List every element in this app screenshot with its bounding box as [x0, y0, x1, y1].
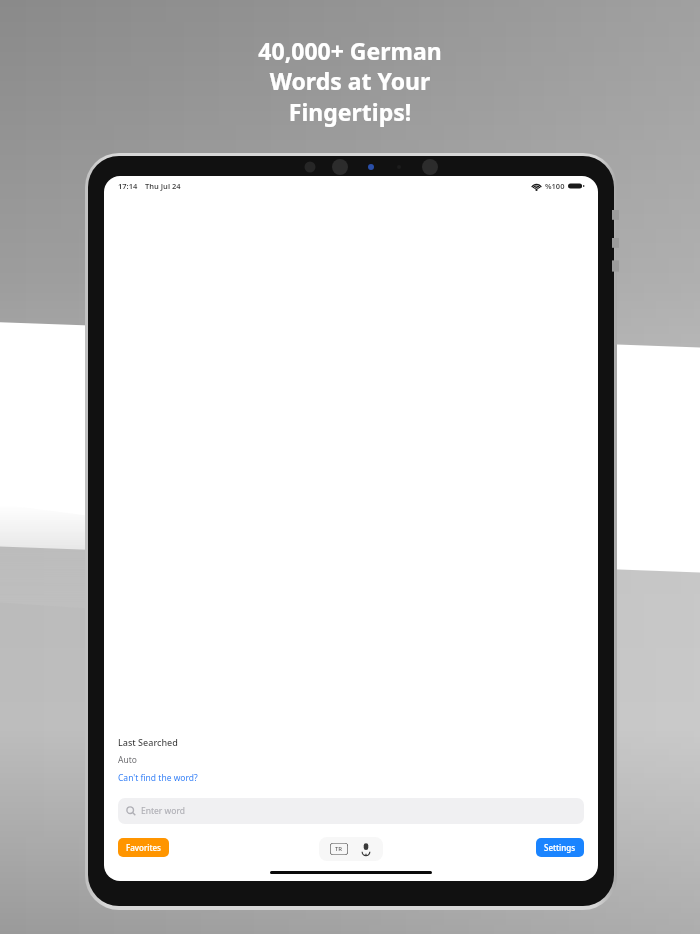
staticText: Settings [544, 842, 576, 853]
staticText: 17:14 [118, 181, 138, 191]
staticText: %100 [545, 181, 565, 191]
staticText: Favorites [126, 842, 161, 853]
button[interactable]: Can't find the word? [118, 772, 198, 784]
button[interactable]: Favorites [118, 838, 169, 857]
button[interactable]: Settings [536, 838, 584, 857]
other: Dictate [360, 842, 372, 857]
staticText: Can't find the word? [118, 772, 198, 784]
staticText: Thu Jul 24 [145, 181, 181, 191]
button[interactable]: Keyboard and dictation [319, 837, 383, 861]
button[interactable]: Enter word [118, 798, 584, 824]
staticText: TR [335, 845, 343, 853]
staticText: Enter word [141, 805, 185, 817]
staticText: Auto [118, 754, 137, 766]
staticText: Last Searched [118, 736, 178, 748]
staticText: 40,000+ German Words at Your Fingertips! [258, 35, 442, 128]
